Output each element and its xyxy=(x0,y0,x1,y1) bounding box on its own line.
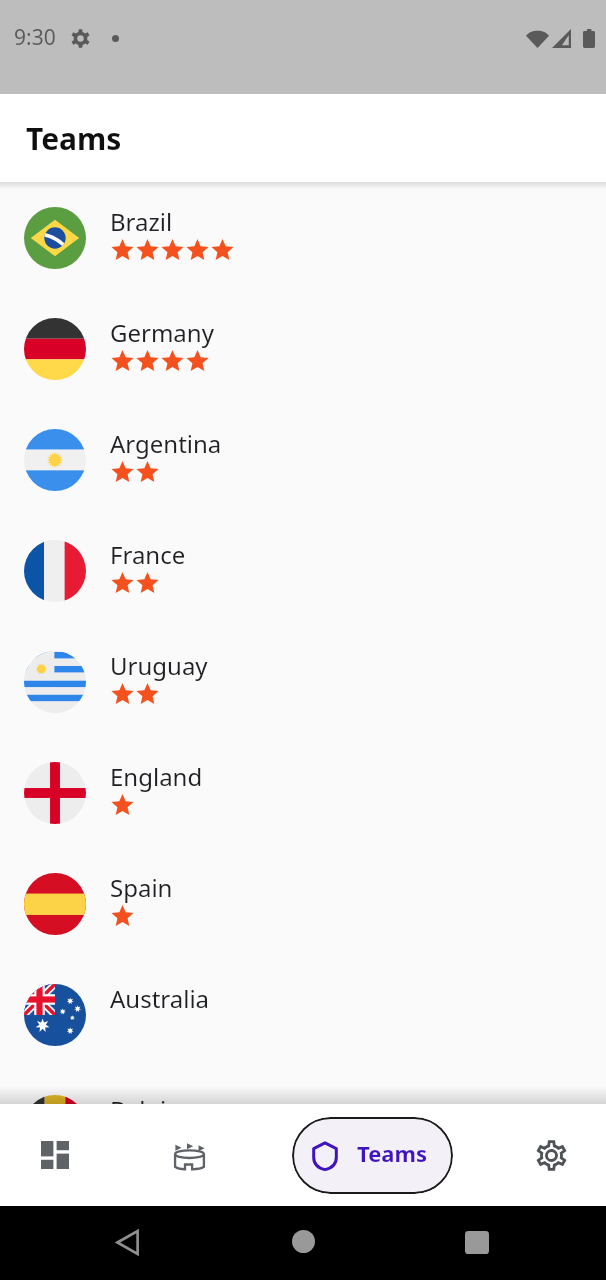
button[interactable]: Home xyxy=(269,1206,337,1280)
button[interactable]: Recents xyxy=(443,1206,511,1280)
button[interactable]: England xyxy=(0,737,606,848)
button[interactable]: Belgium xyxy=(0,1070,606,1181)
staticText: England xyxy=(110,760,203,793)
staticText: Australia xyxy=(110,982,210,1015)
button[interactable]: Settings xyxy=(496,1104,606,1206)
button[interactable]: Germany xyxy=(0,293,606,404)
staticText: Brazil xyxy=(110,205,173,238)
button[interactable]: Uruguay xyxy=(0,626,606,737)
staticText: Uruguay xyxy=(110,649,208,682)
button[interactable]: Argentina xyxy=(0,404,606,515)
staticText: Argentina xyxy=(110,427,222,460)
button[interactable]: Australia xyxy=(0,959,606,1070)
staticText: Spain xyxy=(110,871,173,904)
staticText: Belgium xyxy=(110,1093,204,1126)
button[interactable]: Matches xyxy=(133,1104,245,1206)
staticText: Germany xyxy=(110,316,214,349)
button[interactable]: Brazil xyxy=(0,182,606,293)
button[interactable]: Back xyxy=(93,1206,161,1280)
button[interactable]: France xyxy=(0,515,606,626)
button[interactable]: Teams xyxy=(292,1117,453,1194)
staticText: Teams xyxy=(26,118,122,159)
staticText: 9:30 xyxy=(14,23,56,52)
staticText: France xyxy=(110,538,186,571)
button[interactable]: Spain xyxy=(0,848,606,959)
staticText: Teams xyxy=(357,1138,427,1168)
button[interactable]: Dashboard xyxy=(0,1104,110,1206)
